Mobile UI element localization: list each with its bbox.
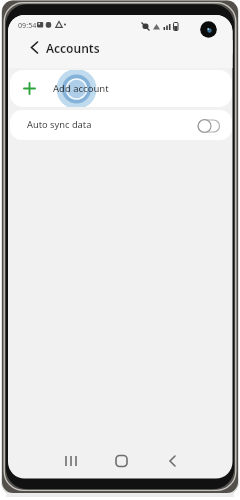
staticText: Add account <box>53 82 109 95</box>
staticText: Auto sync data <box>27 118 92 131</box>
button[interactable]: Add account <box>10 70 232 107</box>
button[interactable] <box>160 450 185 472</box>
button[interactable] <box>109 450 134 472</box>
staticText: 09:54 <box>18 20 37 30</box>
button[interactable] <box>58 450 84 472</box>
button[interactable] <box>26 39 44 56</box>
button[interactable]: Auto sync data <box>10 110 232 140</box>
staticText: Accounts <box>46 40 100 56</box>
